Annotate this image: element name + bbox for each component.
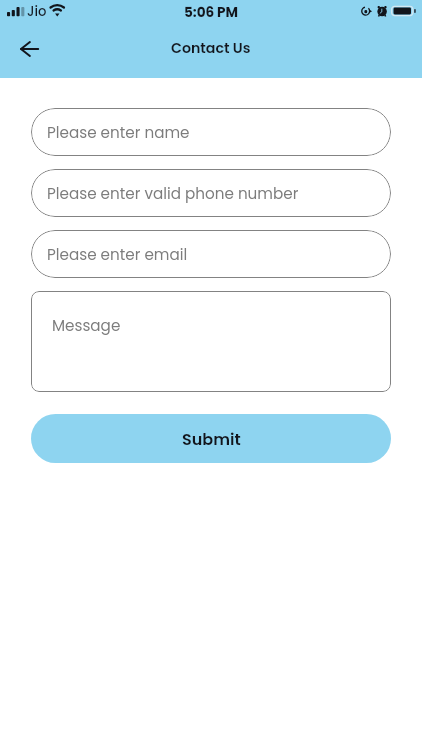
staticText: Please enter valid phone number bbox=[47, 183, 299, 204]
staticText: Submit bbox=[182, 428, 241, 450]
button[interactable]: Submit bbox=[31, 414, 391, 463]
staticText: Contact Us bbox=[171, 38, 251, 58]
button[interactable]: Message bbox=[31, 291, 391, 392]
button[interactable]: Please enter valid phone number bbox=[31, 169, 391, 217]
button[interactable]: Please enter email bbox=[31, 230, 391, 278]
staticText: Please enter email bbox=[47, 244, 188, 265]
staticText: Please enter name bbox=[47, 122, 190, 143]
staticText: Message bbox=[52, 315, 121, 336]
button[interactable]: Please enter name bbox=[31, 108, 391, 156]
staticText: 5:06 PM bbox=[184, 3, 239, 22]
staticText: Jio bbox=[27, 2, 47, 20]
button[interactable]: Back bbox=[12, 37, 46, 61]
